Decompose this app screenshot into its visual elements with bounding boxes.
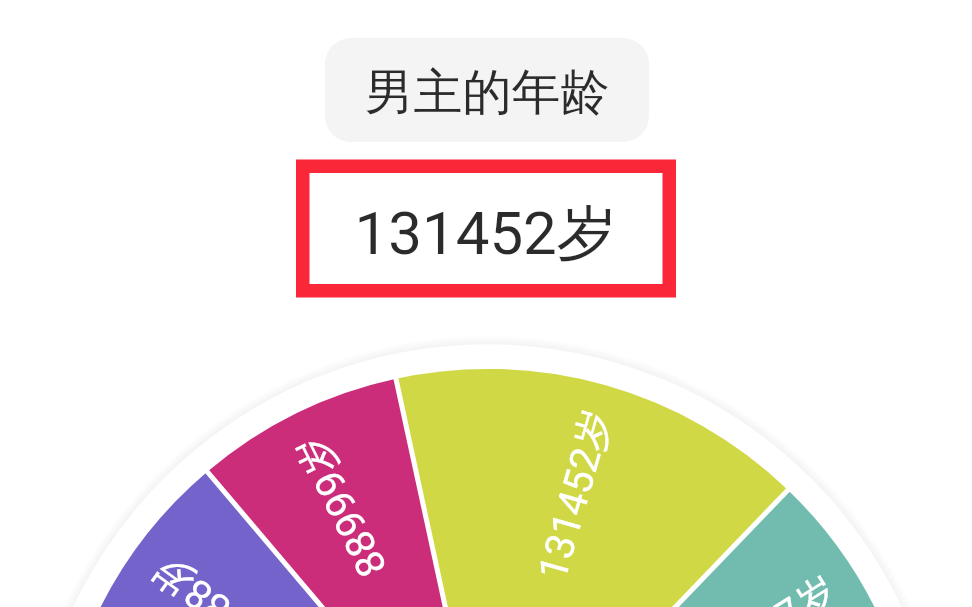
button[interactable]: Prize wheel	[0, 0, 972, 607]
